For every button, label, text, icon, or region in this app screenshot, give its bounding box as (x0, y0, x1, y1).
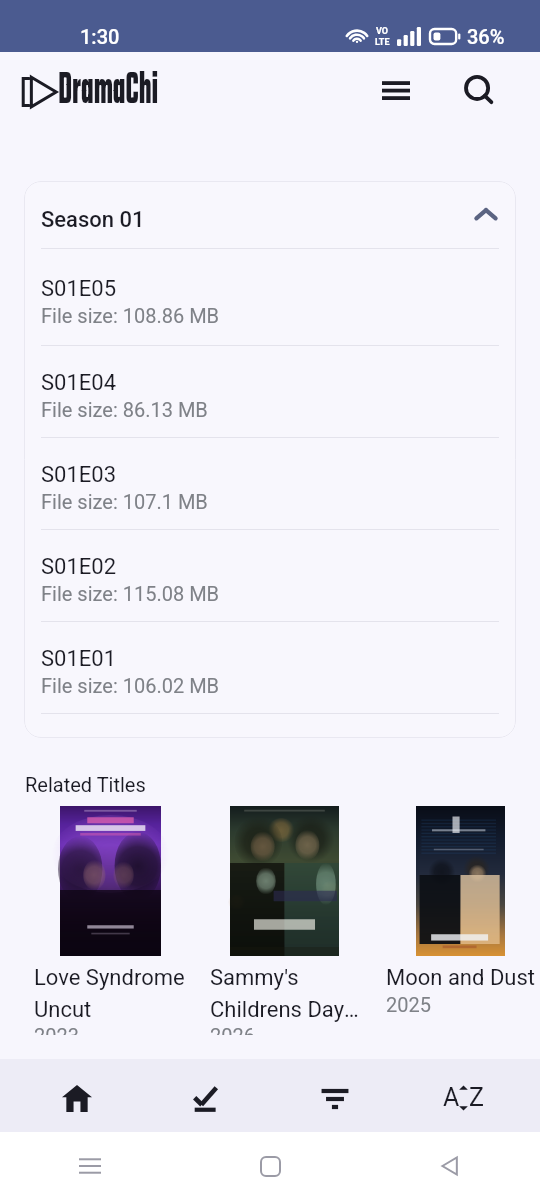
staticText: File size: 86.13 MB (41, 398, 208, 421)
staticText: Moon and Dust (386, 965, 540, 991)
button[interactable]: S01E04 (24, 346, 516, 437)
button[interactable]: Home (180, 1132, 360, 1200)
button[interactable]: Menu (369, 63, 423, 117)
staticText: Z (469, 1083, 484, 1112)
staticText: S01E01 (41, 646, 117, 672)
staticText: LTE (375, 37, 390, 48)
staticText: S01E04 (41, 370, 117, 396)
staticText: A (443, 1083, 460, 1112)
button[interactable]: Recent apps (0, 1132, 180, 1200)
button[interactable]: Search (452, 63, 506, 117)
button[interactable]: Moon and Dust (416, 806, 505, 956)
button[interactable]: S01E03 (24, 438, 516, 529)
button[interactable]: Love Syndrome Uncut (60, 806, 161, 956)
staticText: S01E05 (41, 276, 117, 302)
staticText: 1:30 (80, 25, 120, 48)
button[interactable]: S01E01 (24, 622, 516, 713)
button[interactable]: Back (360, 1132, 540, 1200)
button[interactable]: Filter (270, 1059, 399, 1132)
button[interactable]: Downloads (141, 1059, 270, 1132)
staticText: Season 01 (41, 207, 145, 233)
staticText: 2026 (210, 1024, 255, 1035)
staticText: DramaChi (58, 58, 159, 125)
staticText: Sammy's Childrens Day Care (210, 965, 360, 1022)
staticText: Related Titles (25, 773, 146, 796)
staticText: VO (376, 26, 389, 37)
button[interactable]: Sort A to Z (399, 1059, 528, 1132)
staticText: 36% (467, 25, 505, 48)
button[interactable]: Sammy's Childrens Day Care (230, 806, 339, 956)
staticText: 2023 (34, 1024, 79, 1035)
staticText: File size: 107.1 MB (41, 490, 208, 513)
staticText: File size: 108.86 MB (41, 304, 220, 327)
staticText: Love Syndrome Uncut (34, 965, 190, 1022)
staticText: 2025 (386, 993, 431, 1016)
staticText: File size: 115.08 MB (41, 582, 220, 605)
staticText: S01E02 (41, 554, 117, 580)
button[interactable]: S01E02 (24, 530, 516, 621)
button[interactable]: Home (12, 1059, 141, 1132)
staticText: File size: 106.02 MB (41, 674, 220, 697)
staticText: S01E03 (41, 462, 117, 488)
button[interactable]: Season 01 (24, 181, 516, 248)
button[interactable]: S01E05 (24, 249, 516, 345)
